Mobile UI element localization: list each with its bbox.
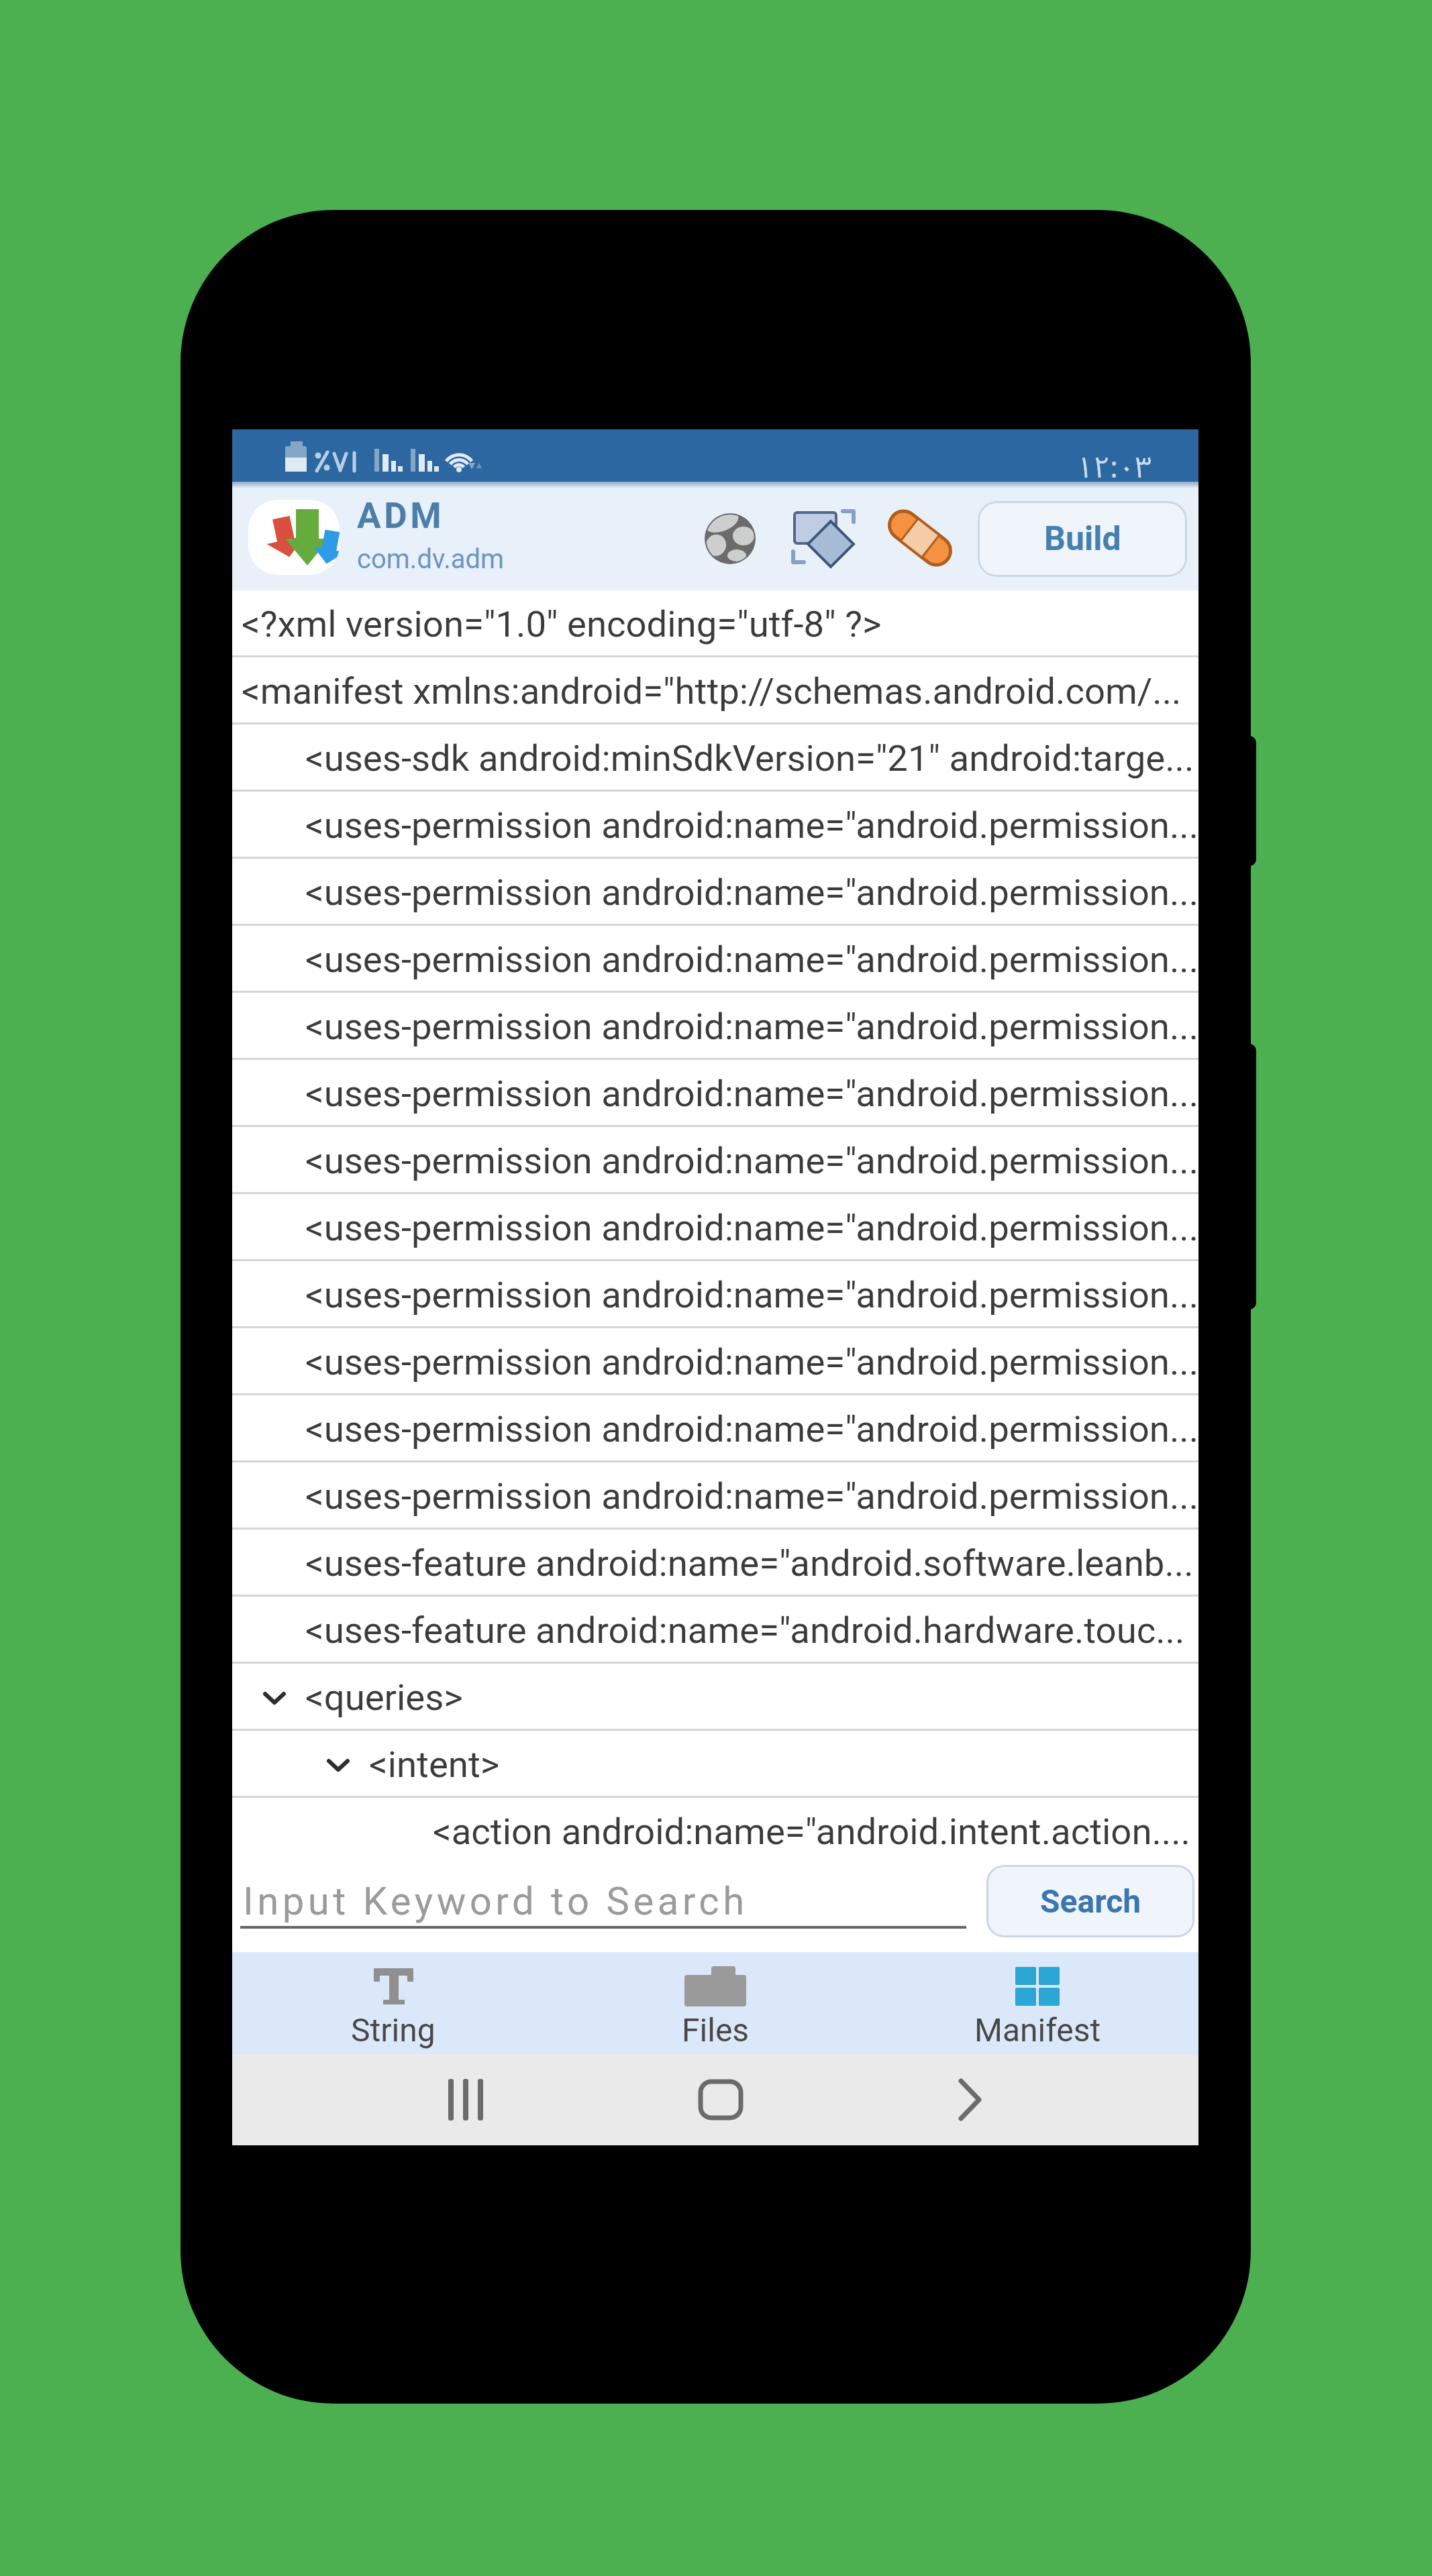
staticText: Files (682, 2011, 750, 2049)
button[interactable]: <uses-permission android:name="android.p… (232, 993, 1198, 1060)
staticText: <uses-permission android:name="android.p… (305, 1340, 1198, 1383)
button[interactable]: <uses-permission android:name="android.p… (232, 1462, 1198, 1529)
staticText: <uses-permission android:name="android.p… (305, 1474, 1198, 1517)
button[interactable]: <uses-permission android:name="android.p… (232, 926, 1198, 993)
button[interactable] (789, 507, 859, 566)
button[interactable]: <?xml version="1.0" encoding="utf-8" ?> (232, 590, 1198, 657)
button[interactable]: <action android:name="android.intent.act… (232, 1798, 1198, 1865)
staticText: <queries> (305, 1676, 463, 1719)
staticText: <manifest xmlns:android="http://schemas.… (242, 669, 1182, 712)
staticText: <uses-permission android:name="android.p… (305, 1072, 1198, 1115)
staticText: <uses-permission android:name="android.p… (305, 871, 1198, 914)
button[interactable] (705, 513, 756, 564)
button[interactable]: <uses-feature android:name="android.soft… (232, 1529, 1198, 1597)
staticText: ADM (357, 495, 445, 537)
staticText: <uses-permission android:name="android.p… (305, 1139, 1198, 1182)
staticText: Input Keyword to Search (243, 1878, 748, 1924)
button[interactable] (554, 2054, 876, 2145)
staticText: <action android:name="android.intent.act… (433, 1810, 1190, 1853)
staticText: <uses-feature android:name="android.hard… (305, 1609, 1185, 1652)
button[interactable] (240, 1926, 966, 1929)
button[interactable] (248, 500, 340, 575)
staticText: <?xml version="1.0" encoding="utf-8" ?> (242, 602, 882, 645)
button[interactable]: <manifest xmlns:android="http://schemas.… (232, 657, 1198, 724)
button[interactable]: <uses-permission android:name="android.p… (232, 1194, 1198, 1261)
staticText: <uses-permission android:name="android.p… (305, 938, 1198, 981)
staticText: Manifest (974, 2011, 1101, 2049)
button[interactable]: <intent> (232, 1731, 1198, 1798)
button[interactable]: Files (554, 1952, 876, 2054)
staticText: Search (1040, 1882, 1141, 1920)
staticText: com.dv.adm (357, 543, 505, 575)
button[interactable] (876, 2054, 1198, 2145)
button[interactable]: <uses-permission android:name="android.p… (232, 792, 1198, 859)
button[interactable]: <uses-permission android:name="android.p… (232, 1127, 1198, 1194)
button[interactable]: String (232, 1952, 554, 2054)
staticText: <uses-permission android:name="android.p… (305, 1005, 1198, 1048)
staticText: Build (1044, 519, 1121, 559)
staticText: String (351, 2011, 436, 2049)
staticText: <uses-permission android:name="android.p… (305, 1206, 1198, 1249)
button[interactable] (232, 2054, 554, 2145)
staticText: ١٢:٠٣ (1076, 437, 1152, 490)
button[interactable]: <queries> (232, 1664, 1198, 1731)
staticText: <uses-sdk android:minSdkVersion="21" and… (305, 737, 1194, 780)
staticText: <uses-permission android:name="android.p… (305, 804, 1198, 847)
button[interactable]: <uses-feature android:name="android.hard… (232, 1597, 1198, 1664)
button[interactable]: <uses-permission android:name="android.p… (232, 1395, 1198, 1462)
button[interactable]: Build (978, 501, 1187, 577)
staticText: <uses-permission android:name="android.p… (305, 1273, 1198, 1316)
staticText: <intent> (369, 1743, 500, 1786)
button[interactable]: <uses-permission android:name="android.p… (232, 859, 1198, 926)
button[interactable]: <uses-permission android:name="android.p… (232, 1328, 1198, 1395)
button[interactable] (886, 510, 954, 566)
button[interactable]: <uses-permission android:name="android.p… (232, 1261, 1198, 1328)
staticText: <uses-feature android:name="android.soft… (305, 1542, 1194, 1585)
button[interactable]: Search (986, 1865, 1194, 1937)
button[interactable]: <uses-sdk android:minSdkVersion="21" and… (232, 724, 1198, 792)
staticText: <uses-permission android:name="android.p… (305, 1407, 1198, 1450)
button[interactable]: Manifest (876, 1952, 1198, 2054)
button[interactable]: <uses-permission android:name="android.p… (232, 1060, 1198, 1127)
